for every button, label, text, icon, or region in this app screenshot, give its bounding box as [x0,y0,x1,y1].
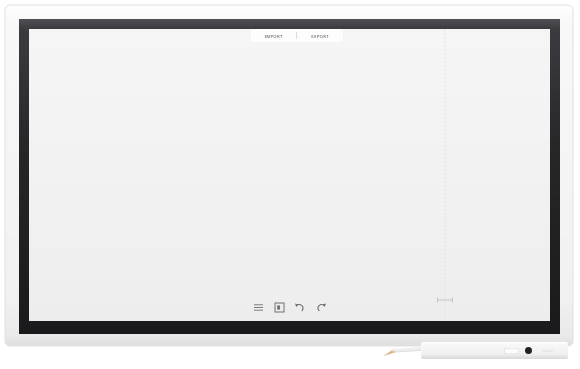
button[interactable]: Power [525,347,532,354]
button[interactable]: Undo [292,299,308,315]
button[interactable]: Tray control [504,348,519,354]
button[interactable]: Redo [313,299,329,315]
staticText: EXPORT [311,33,329,39]
staticText: IMPORT [264,33,283,39]
button[interactable]: IMPORT [251,29,296,42]
button[interactable]: New page [271,299,287,315]
button[interactable]: Menu [250,299,266,315]
button[interactable]: EXPORT [297,29,343,42]
other: Stylus pen [383,344,427,357]
